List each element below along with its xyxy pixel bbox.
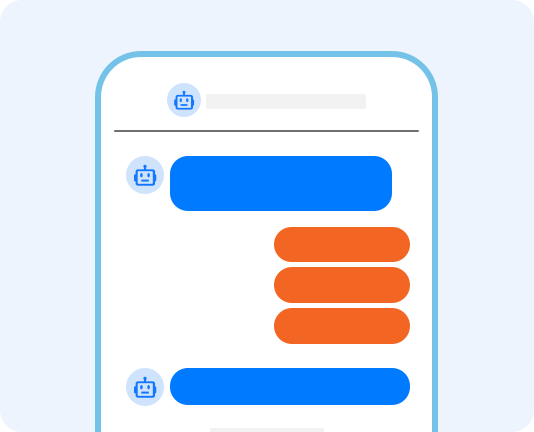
button[interactable]: Assistant profile [167, 83, 201, 117]
button[interactable]: Assistant message [170, 156, 392, 211]
button[interactable]: Your message [274, 267, 410, 303]
button[interactable]: Assistant message [170, 368, 410, 405]
button[interactable]: Your message [274, 308, 410, 344]
button[interactable]: Your message [274, 227, 410, 262]
